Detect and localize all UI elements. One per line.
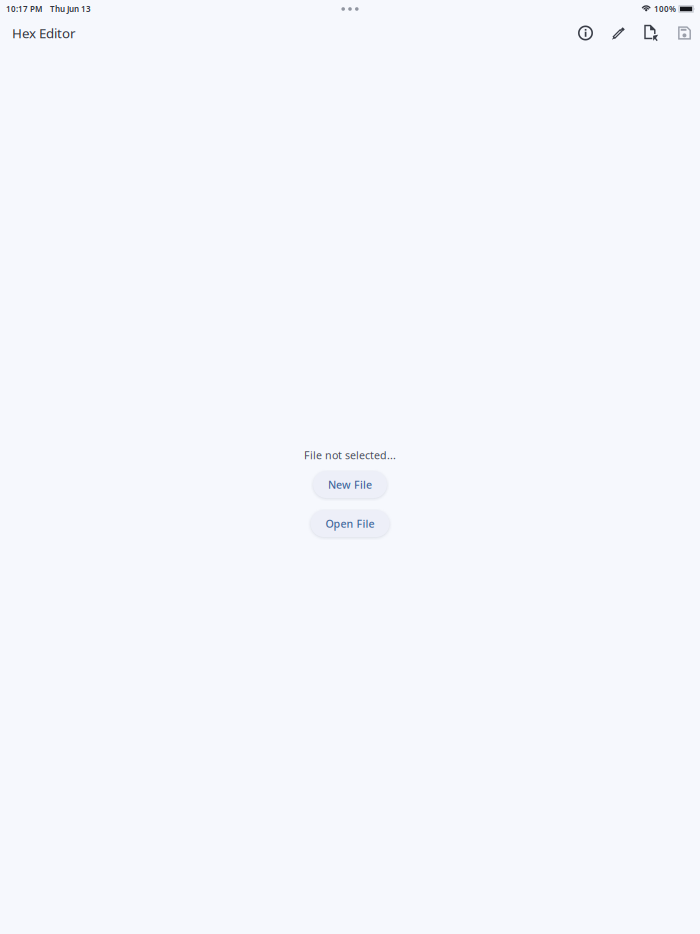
- staticText: File not selected...: [304, 448, 396, 462]
- staticText: 100%: [654, 4, 676, 14]
- staticText: Hex Editor: [12, 24, 76, 42]
- button[interactable]: New File: [313, 471, 387, 498]
- button[interactable]: Open File: [310, 510, 389, 537]
- button[interactable]: Open file: [635, 19, 668, 47]
- staticText: New File: [328, 477, 372, 492]
- staticText: Open File: [325, 516, 374, 531]
- button[interactable]: Info: [569, 19, 602, 47]
- staticText: 10:17 PM: [6, 4, 42, 14]
- staticText: Thu Jun 13: [50, 4, 91, 14]
- button[interactable]: Edit: [602, 19, 635, 47]
- button[interactable]: Save: [668, 19, 700, 47]
